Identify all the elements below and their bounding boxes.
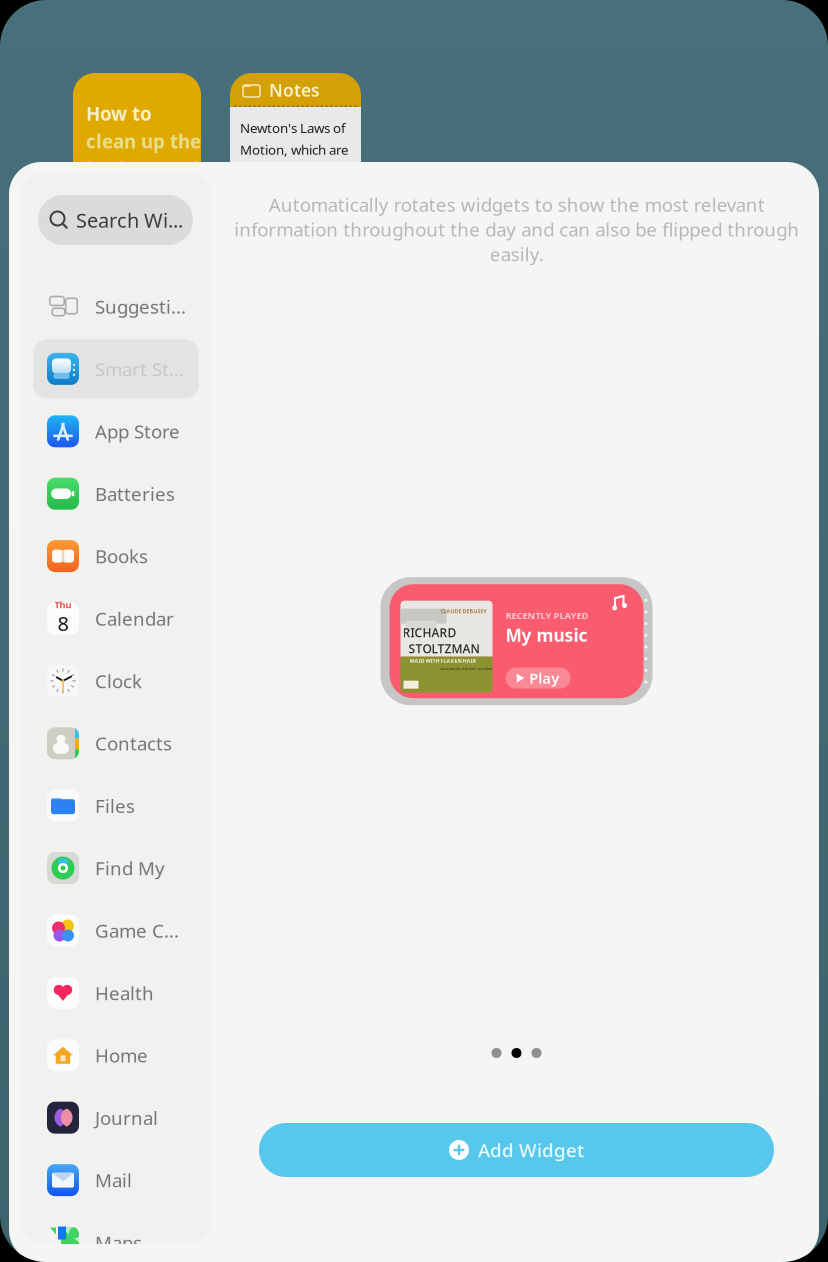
staticText: Motion, which are bbox=[240, 141, 349, 158]
staticText: Books bbox=[95, 544, 148, 568]
staticText: Game C... bbox=[95, 918, 179, 943]
staticText: RECENTLY PLAYED bbox=[505, 609, 588, 622]
button[interactable]: Files bbox=[33, 776, 199, 835]
staticText: Batteries bbox=[95, 481, 175, 506]
button[interactable]: Clock bbox=[33, 651, 199, 710]
staticText: Search Wi... bbox=[76, 207, 183, 233]
button[interactable]: Game C... bbox=[33, 901, 199, 960]
staticText: clean up the bbox=[86, 129, 201, 154]
button[interactable]: Batteries bbox=[33, 464, 199, 523]
staticText: Newton's Laws of bbox=[240, 119, 346, 137]
staticText: Clock bbox=[95, 668, 142, 693]
staticText: Play bbox=[529, 668, 559, 688]
button[interactable]: App Store bbox=[33, 402, 199, 461]
button[interactable]: Find My bbox=[33, 839, 199, 898]
staticText: 8 bbox=[57, 610, 68, 636]
button[interactable]: Maps bbox=[33, 1213, 199, 1262]
button[interactable]: Thu bbox=[33, 589, 199, 648]
staticText: Home bbox=[95, 1043, 148, 1068]
staticText: Files bbox=[95, 793, 135, 818]
button[interactable]: Health bbox=[33, 963, 199, 1022]
staticText: MAID WITH FLAXEN HAIR bbox=[409, 657, 475, 664]
staticText: STOLTZMAN bbox=[408, 641, 479, 657]
staticText: Calendar bbox=[95, 606, 174, 631]
staticText: CLAUDE DEBUSSY SYMPHONY ORCHESTRA bbox=[438, 667, 492, 671]
staticText: Add Widget bbox=[478, 1138, 584, 1162]
staticText: Automatically rotates widgets to show th… bbox=[234, 192, 799, 266]
button[interactable]: Smart St... bbox=[33, 339, 199, 398]
staticText: My music bbox=[505, 624, 587, 647]
button[interactable]: Home bbox=[33, 1026, 199, 1085]
staticText: RICHARD bbox=[402, 625, 456, 641]
staticText: Smart St... bbox=[95, 356, 184, 381]
staticText: Suggesti... bbox=[95, 294, 186, 319]
staticText: Contacts bbox=[95, 731, 172, 756]
staticText: background bbox=[86, 157, 199, 181]
button[interactable]: Search Wi... bbox=[38, 195, 193, 245]
button[interactable]: Journal bbox=[33, 1088, 199, 1147]
staticText: Notes bbox=[269, 78, 320, 101]
button[interactable]: Add Widget bbox=[259, 1123, 774, 1177]
staticText: Journal bbox=[95, 1105, 158, 1130]
button[interactable]: Suggesti... bbox=[33, 277, 199, 336]
button[interactable]: Contacts bbox=[33, 714, 199, 773]
button[interactable]: Mail bbox=[33, 1151, 199, 1210]
button[interactable]: Books bbox=[33, 527, 199, 586]
staticText: App Store bbox=[95, 419, 180, 444]
staticText: How to bbox=[86, 101, 152, 126]
staticText: Maps bbox=[95, 1230, 142, 1255]
staticText: Health bbox=[95, 980, 154, 1005]
staticText: Mail bbox=[95, 1168, 132, 1192]
staticText: Find My bbox=[95, 856, 165, 880]
staticText: Thu bbox=[54, 598, 71, 611]
staticText: CLAUDE DEBUSSY bbox=[440, 608, 486, 615]
